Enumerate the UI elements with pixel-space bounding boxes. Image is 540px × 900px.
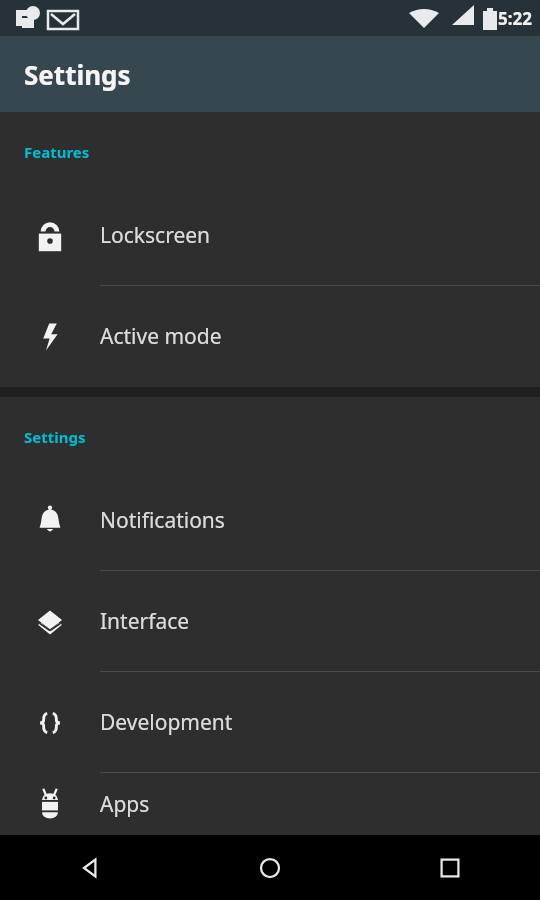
staticText: Notifications: [100, 506, 225, 535]
staticText: Active mode: [100, 322, 222, 351]
button[interactable]: Apps: [0, 773, 540, 835]
staticText: Settings: [24, 427, 86, 447]
staticText: Settings: [24, 57, 131, 92]
staticText: Features: [24, 142, 90, 162]
button[interactable]: Development: [0, 672, 540, 773]
button[interactable]: Back: [0, 835, 180, 900]
button[interactable]: Recent apps: [360, 835, 540, 900]
button[interactable]: Interface: [0, 571, 540, 672]
button[interactable]: Lockscreen: [0, 185, 540, 286]
staticText: 5:22: [498, 7, 532, 30]
staticText: Development: [100, 708, 233, 737]
button[interactable]: Home: [180, 835, 360, 900]
staticText: Interface: [100, 607, 190, 636]
staticText: Lockscreen: [100, 221, 211, 250]
button[interactable]: Notifications: [0, 470, 540, 571]
button[interactable]: Active mode: [0, 286, 540, 387]
staticText: Apps: [100, 790, 150, 819]
